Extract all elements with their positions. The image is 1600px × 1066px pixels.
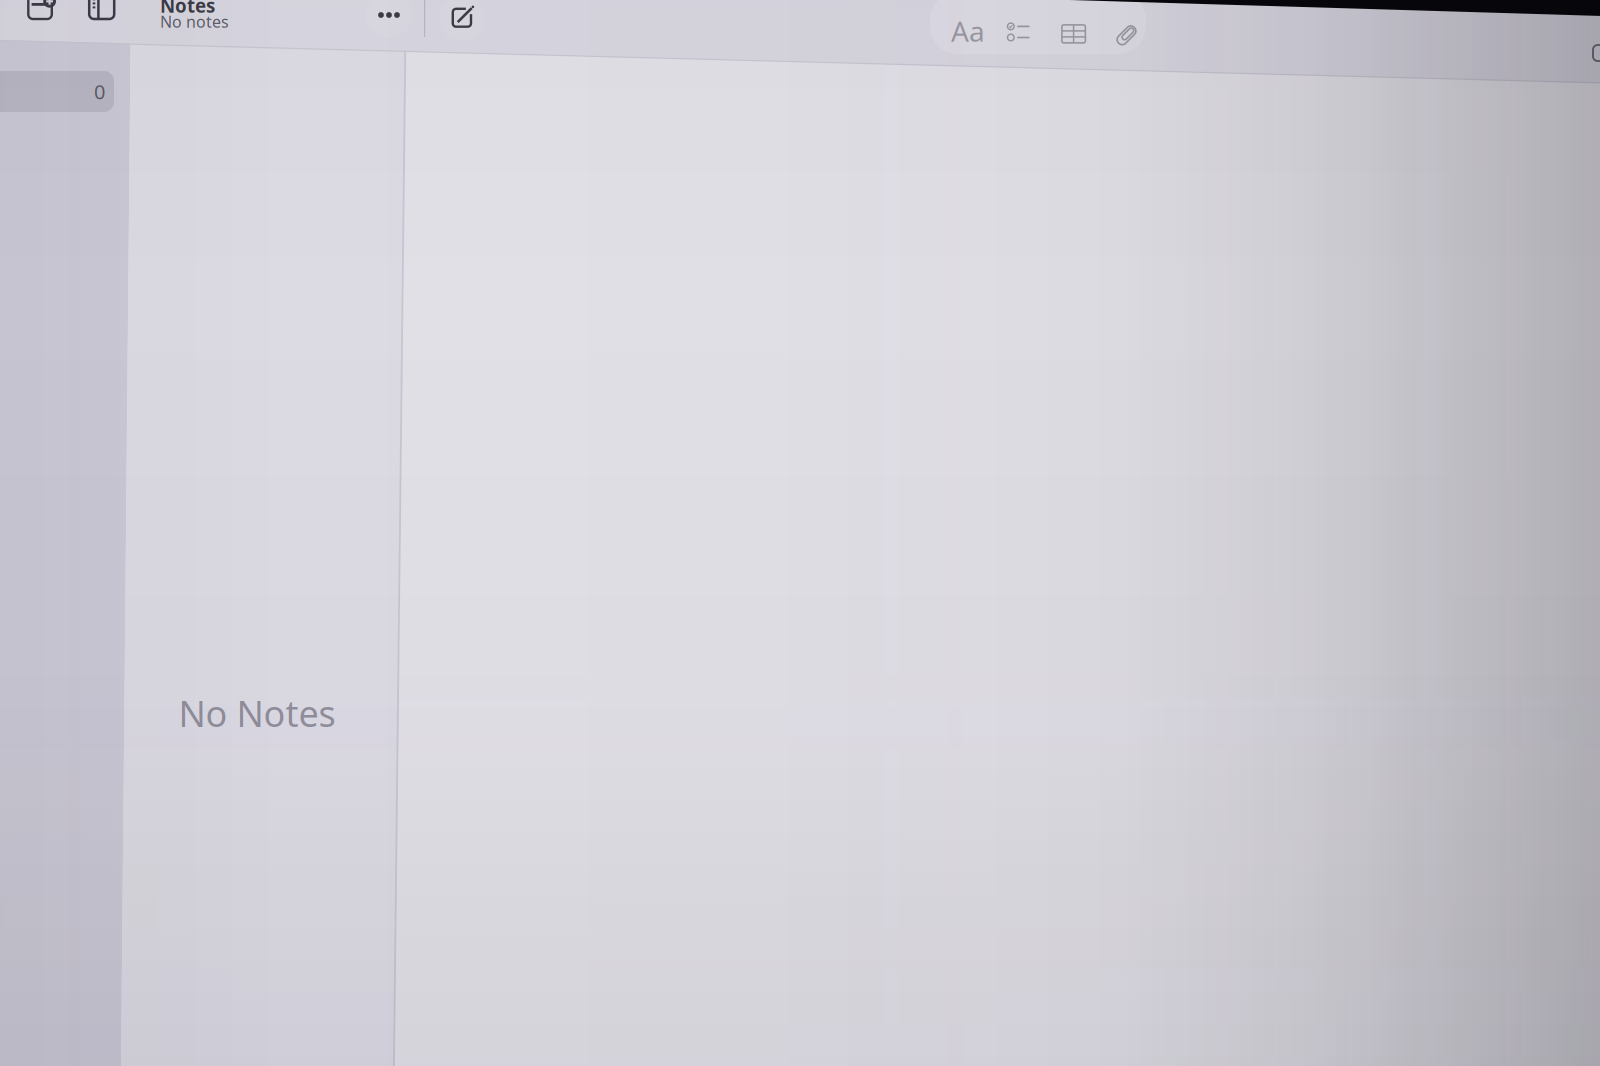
- staticText: 0: [94, 78, 105, 105]
- button[interactable]: Checklist: [997, 12, 1041, 52]
- staticText: No notes: [160, 11, 229, 32]
- button[interactable]: Table: [1052, 14, 1096, 54]
- button[interactable]: More options: [1592, 44, 1600, 62]
- button[interactable]: Hide Sidebar: [88, 0, 116, 19]
- button[interactable]: New Folder: [27, 0, 57, 19]
- button[interactable]: More: [365, 0, 413, 35]
- button[interactable]: New Note: [439, 0, 487, 38]
- button[interactable]: Notes folder, 0 notes: [0, 71, 114, 112]
- button[interactable]: Format: [946, 11, 990, 51]
- staticText: Notes: [160, 0, 215, 18]
- staticText: Aa: [951, 12, 985, 50]
- button[interactable]: Attach: [1105, 15, 1149, 55]
- staticText: No Notes: [178, 689, 335, 737]
